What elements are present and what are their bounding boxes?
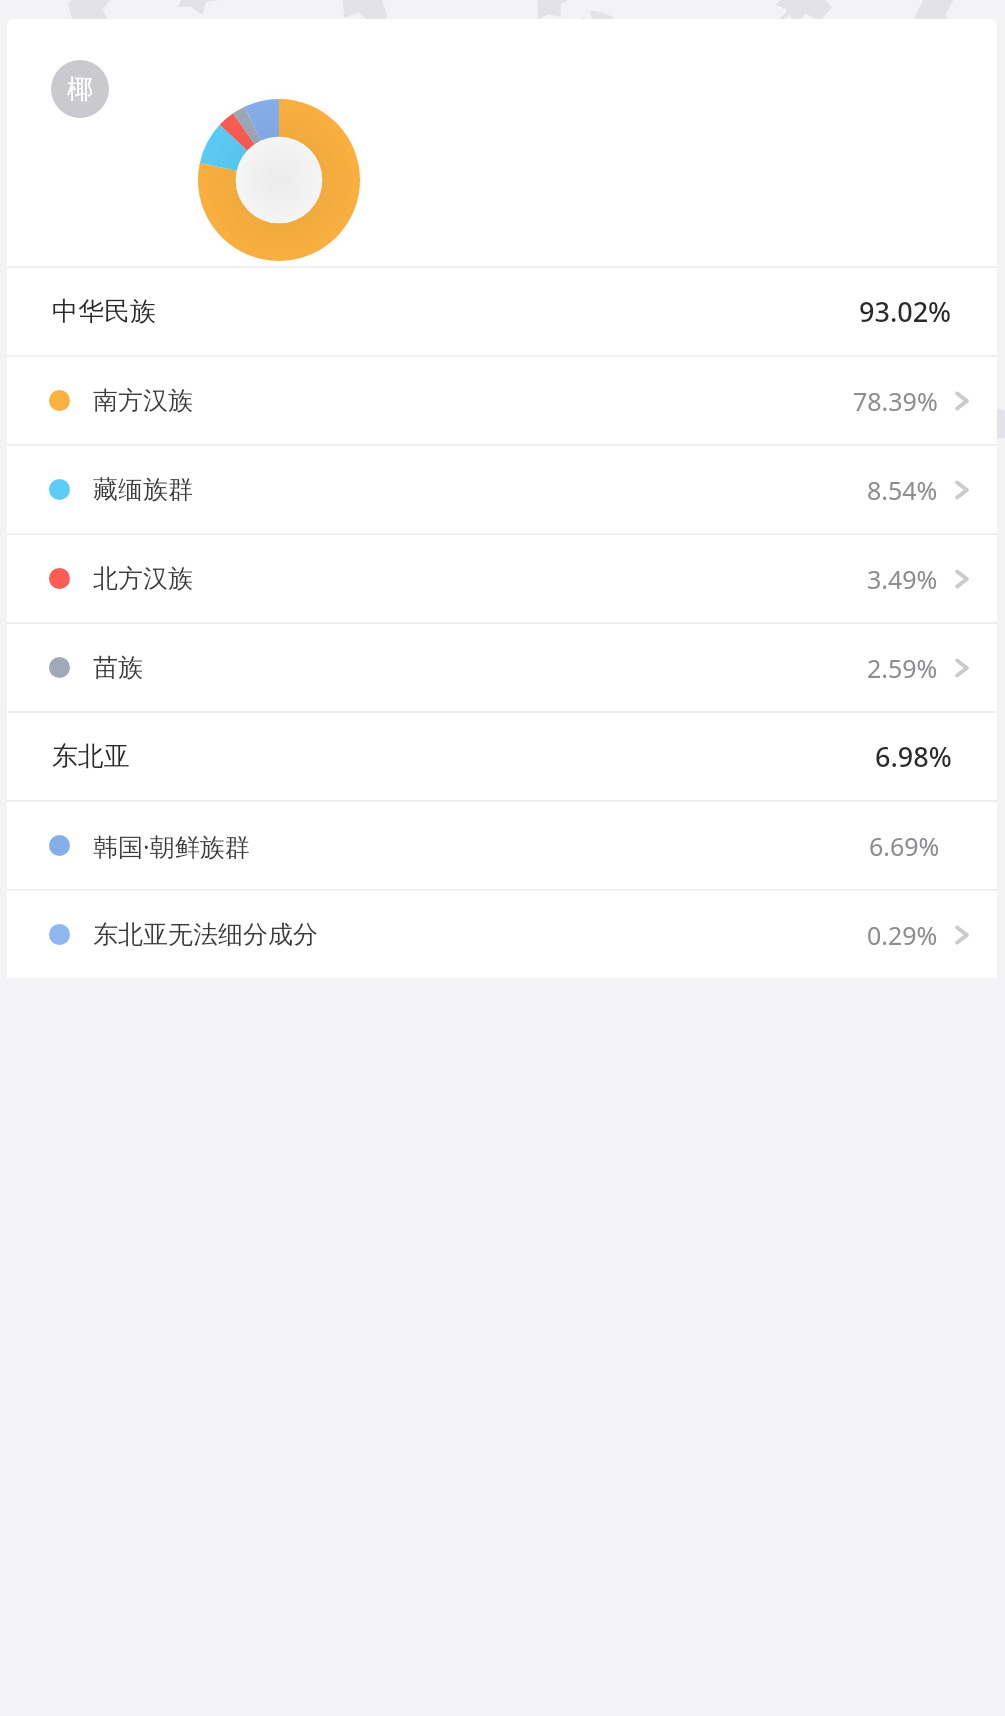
button[interactable]: 苗族	[7, 624, 997, 711]
button[interactable]: 东北亚	[7, 713, 997, 800]
button[interactable]: 北方汉族	[7, 535, 997, 622]
button[interactable]: 中华民族	[7, 268, 997, 355]
staticText: 93.02%	[859, 293, 952, 330]
staticText: 南方汉族	[93, 385, 193, 416]
button[interactable]: 东北亚无法细分成分	[7, 891, 997, 978]
staticText: 2.59%	[867, 651, 938, 685]
staticText: 8.54%	[867, 473, 938, 507]
staticText: 6.98%	[875, 738, 952, 775]
staticText: 78.39%	[853, 384, 938, 418]
button[interactable]: 藏缅族群	[7, 446, 997, 533]
button[interactable]: 韩国·朝鲜族群	[7, 802, 997, 889]
staticText: 0.29%	[867, 918, 938, 952]
staticText: 东北亚	[52, 740, 130, 773]
button[interactable]: 南方汉族	[7, 357, 997, 444]
staticText: 椰	[67, 73, 93, 106]
staticText: 藏缅族群	[93, 474, 193, 505]
staticText: 中华民族	[52, 295, 156, 328]
staticText: 北方汉族	[93, 563, 193, 594]
staticText: 3.49%	[867, 562, 938, 596]
staticText: 东北亚无法细分成分	[93, 919, 318, 950]
staticText: 6.69%	[869, 829, 940, 863]
button[interactable]: Profile	[51, 60, 109, 118]
staticText: 韩国·朝鲜族群	[93, 829, 250, 863]
staticText: 苗族	[93, 652, 143, 683]
